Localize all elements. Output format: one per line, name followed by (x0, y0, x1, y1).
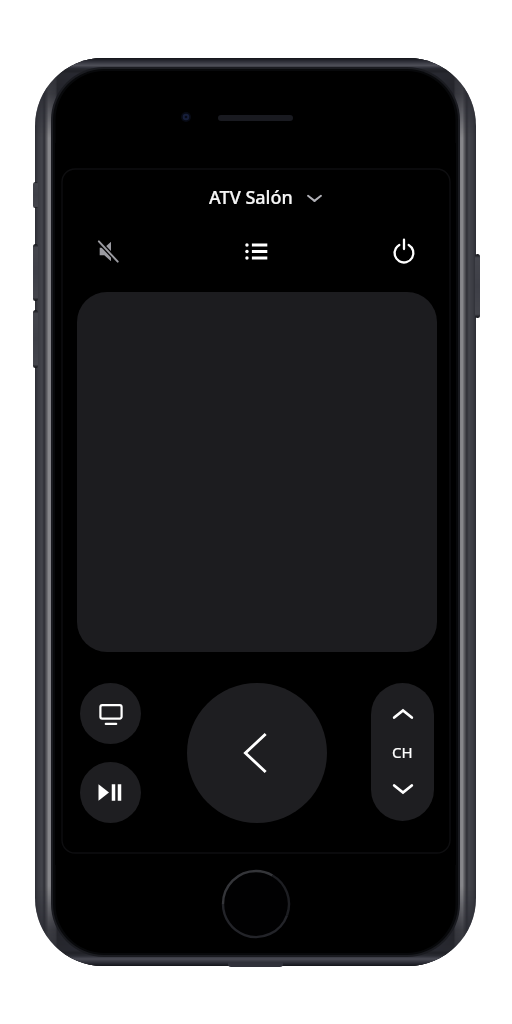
button[interactable]: ATV Salón (209, 179, 329, 215)
button[interactable]: Back (187, 683, 327, 823)
button[interactable]: Power (380, 226, 428, 274)
button[interactable]: Channel up and down (371, 683, 434, 821)
staticText: ATV Salón (209, 185, 293, 210)
button[interactable]: TV (80, 683, 141, 744)
staticText: CH (392, 742, 413, 762)
button[interactable]: Menu list (232, 227, 280, 275)
button[interactable]: Mute (84, 227, 132, 275)
button[interactable]: Play or pause (80, 762, 141, 823)
